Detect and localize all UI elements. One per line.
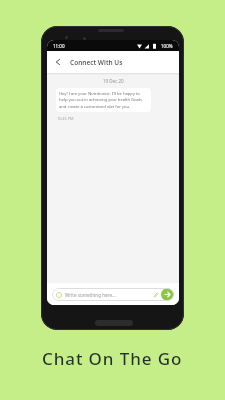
button[interactable]: Write something here... [52,288,174,301]
button[interactable] [161,288,174,301]
button[interactable]: Hey! I am your Nutritionist. I'll be hap… [56,88,151,112]
staticText: Chat On The Go [42,347,183,370]
staticText: Connect With Us [70,58,123,67]
staticText: 11:00 [53,43,65,49]
staticText: 19 Dec 20 [103,78,124,84]
staticText: Hey! I am your Nutritionist. I'll be hap… [59,90,142,110]
button[interactable]: Connect With Us [47,51,179,73]
staticText: 100% [161,43,173,49]
staticText: 10:45 PM [57,116,74,121]
staticText: Write something here... [65,292,116,298]
